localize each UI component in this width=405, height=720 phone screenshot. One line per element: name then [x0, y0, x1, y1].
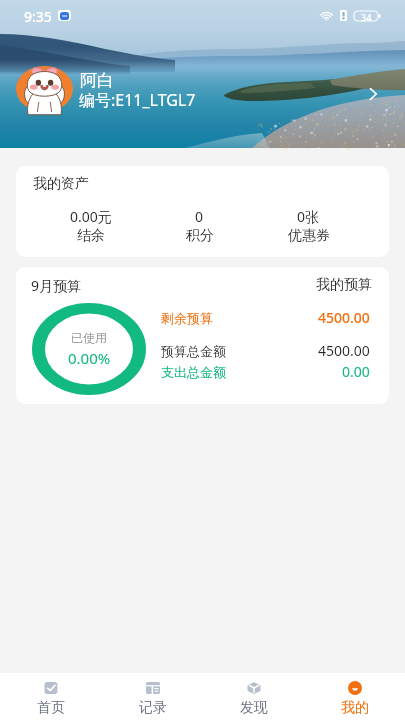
staticText: 剩余预算	[161, 310, 213, 326]
staticText: 编号:E11_LTGL7	[79, 89, 196, 111]
staticText: 我的资产	[33, 175, 89, 193]
button[interactable]: 记录	[102, 673, 203, 720]
button[interactable]: 我的资产	[16, 166, 389, 257]
staticText: 发现	[240, 699, 268, 717]
staticText: 支出总金额	[161, 364, 226, 380]
staticText: 0.00	[342, 362, 370, 381]
button[interactable]: 9月预算	[16, 267, 389, 404]
staticText: 我的预算	[316, 276, 372, 294]
button[interactable]: 发现	[203, 673, 304, 720]
staticText: 预算总金额	[161, 343, 226, 359]
staticText: 积分	[186, 227, 214, 245]
staticText: 4500.00	[318, 341, 370, 360]
staticText: 我的	[341, 699, 369, 717]
button[interactable]: 首页	[0, 673, 102, 720]
staticText: 9月预算	[31, 276, 82, 295]
button[interactable]: 查看个人资料	[361, 82, 385, 106]
staticText: 0.00%	[68, 348, 111, 368]
staticText: 34	[361, 11, 372, 21]
staticText: 记录	[139, 699, 167, 717]
staticText: 0.00元	[70, 207, 112, 226]
staticText: 已使用	[71, 330, 107, 345]
staticText: 4500.00	[318, 308, 370, 327]
staticText: 9:35	[24, 7, 52, 26]
staticText: 结余	[77, 227, 105, 245]
button[interactable]: 我的	[304, 673, 405, 720]
staticText: 阿白	[80, 70, 114, 91]
staticText: 0张	[297, 207, 320, 226]
staticText: 首页	[37, 699, 65, 717]
staticText: 0	[195, 207, 204, 226]
staticText: 优惠券	[288, 227, 330, 245]
